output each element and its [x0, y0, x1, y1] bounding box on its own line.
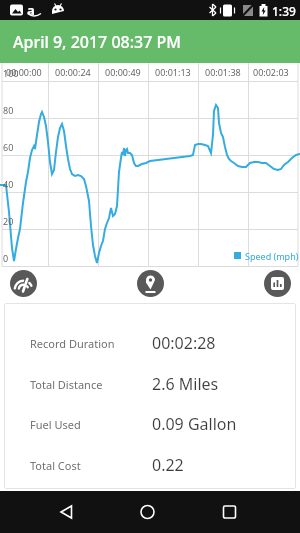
staticText: 00:00:49 — [105, 66, 141, 78]
button[interactable]: Total Distance — [4, 364, 296, 404]
staticText: 00:00:24 — [55, 66, 91, 78]
button[interactable]: Record Duration — [4, 323, 296, 363]
staticText: Speed (mph) — [245, 250, 299, 262]
staticText: 60 — [3, 141, 14, 153]
staticText: Total Cost — [30, 458, 81, 473]
button[interactable]: April 9, 2017 08:37 PM — [0, 20, 300, 63]
button[interactable] — [118, 491, 178, 533]
staticText: 0 — [3, 252, 9, 264]
button[interactable] — [10, 270, 37, 297]
button[interactable] — [264, 270, 291, 297]
staticText: 2.6 Miles — [152, 373, 219, 395]
button[interactable]: Fuel Used — [4, 404, 296, 444]
button[interactable]: Total Cost — [4, 445, 296, 485]
staticText: 20 — [3, 215, 14, 227]
staticText: 0.09 Gallon — [152, 413, 237, 435]
staticText: 80 — [3, 104, 14, 116]
staticText: 100 — [3, 67, 19, 79]
button[interactable] — [36, 491, 96, 533]
staticText: a — [27, 1, 35, 19]
staticText: 0.22 — [152, 454, 184, 476]
button[interactable] — [137, 270, 164, 297]
staticText: April 9, 2017 08:37 PM — [13, 31, 181, 53]
staticText: 00:01:13 — [155, 66, 191, 78]
staticText: Fuel Used — [30, 417, 81, 432]
staticText: Total Distance — [30, 377, 103, 392]
staticText: 40 — [3, 178, 14, 190]
staticText: Record Duration — [30, 336, 115, 351]
staticText: 00:01:38 — [205, 66, 241, 78]
staticText: 00:02:28 — [152, 332, 216, 354]
staticText: 1:39 — [272, 3, 296, 19]
button[interactable] — [200, 491, 260, 533]
staticText: 00:02:03 — [253, 66, 289, 78]
staticText: 00:00:00 — [6, 66, 42, 78]
